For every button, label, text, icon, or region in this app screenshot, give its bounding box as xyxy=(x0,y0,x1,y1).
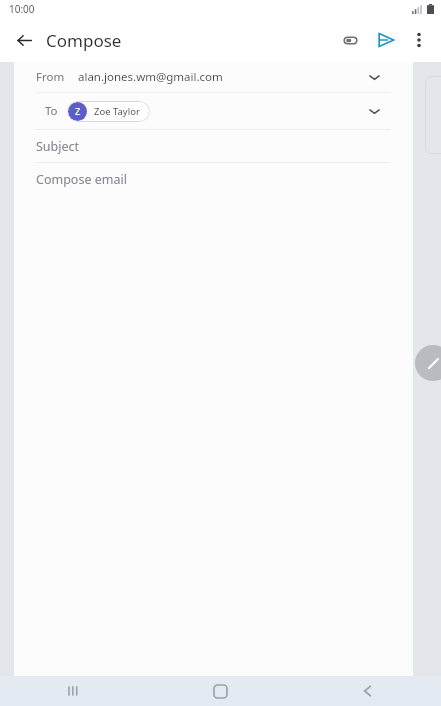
staticText: 10:00 xyxy=(9,2,35,16)
staticText: Compose xyxy=(46,29,122,52)
staticText: alan.jones.wm@gmail.com xyxy=(78,69,223,85)
button[interactable]: Compose email xyxy=(14,163,413,195)
button[interactable]: More options xyxy=(404,25,434,55)
button[interactable]: To xyxy=(14,93,413,129)
button[interactable]: Attach file xyxy=(333,23,367,57)
button[interactable]: Subject xyxy=(14,130,413,162)
other: Expand from xyxy=(362,65,386,89)
button[interactable]: From xyxy=(14,62,413,92)
staticText: From xyxy=(36,69,65,85)
staticText: Subject xyxy=(36,138,80,155)
staticText: To xyxy=(45,103,58,119)
button[interactable]: Z xyxy=(67,101,150,122)
button[interactable]: Back xyxy=(8,24,40,56)
button[interactable]: Home xyxy=(147,676,294,706)
staticText: Z xyxy=(75,105,81,118)
button[interactable]: Send xyxy=(369,23,403,57)
button[interactable]: Back xyxy=(294,676,441,706)
staticText: Compose email xyxy=(36,171,127,188)
button[interactable]: Edit xyxy=(415,345,441,381)
other: Expand recipients xyxy=(362,99,386,123)
staticText: Zoe Taylor xyxy=(94,105,140,118)
button[interactable]: Recent apps xyxy=(0,676,147,706)
